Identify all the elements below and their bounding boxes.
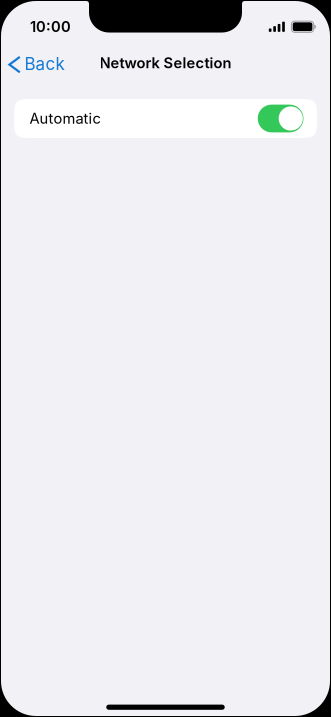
staticText: 10:00 [30,18,71,36]
button[interactable]: Back [1,46,74,80]
staticText: Network Selection [99,54,231,72]
button[interactable]: Automatic [14,99,317,138]
staticText: Automatic [29,110,100,127]
staticText: Back [24,54,64,74]
